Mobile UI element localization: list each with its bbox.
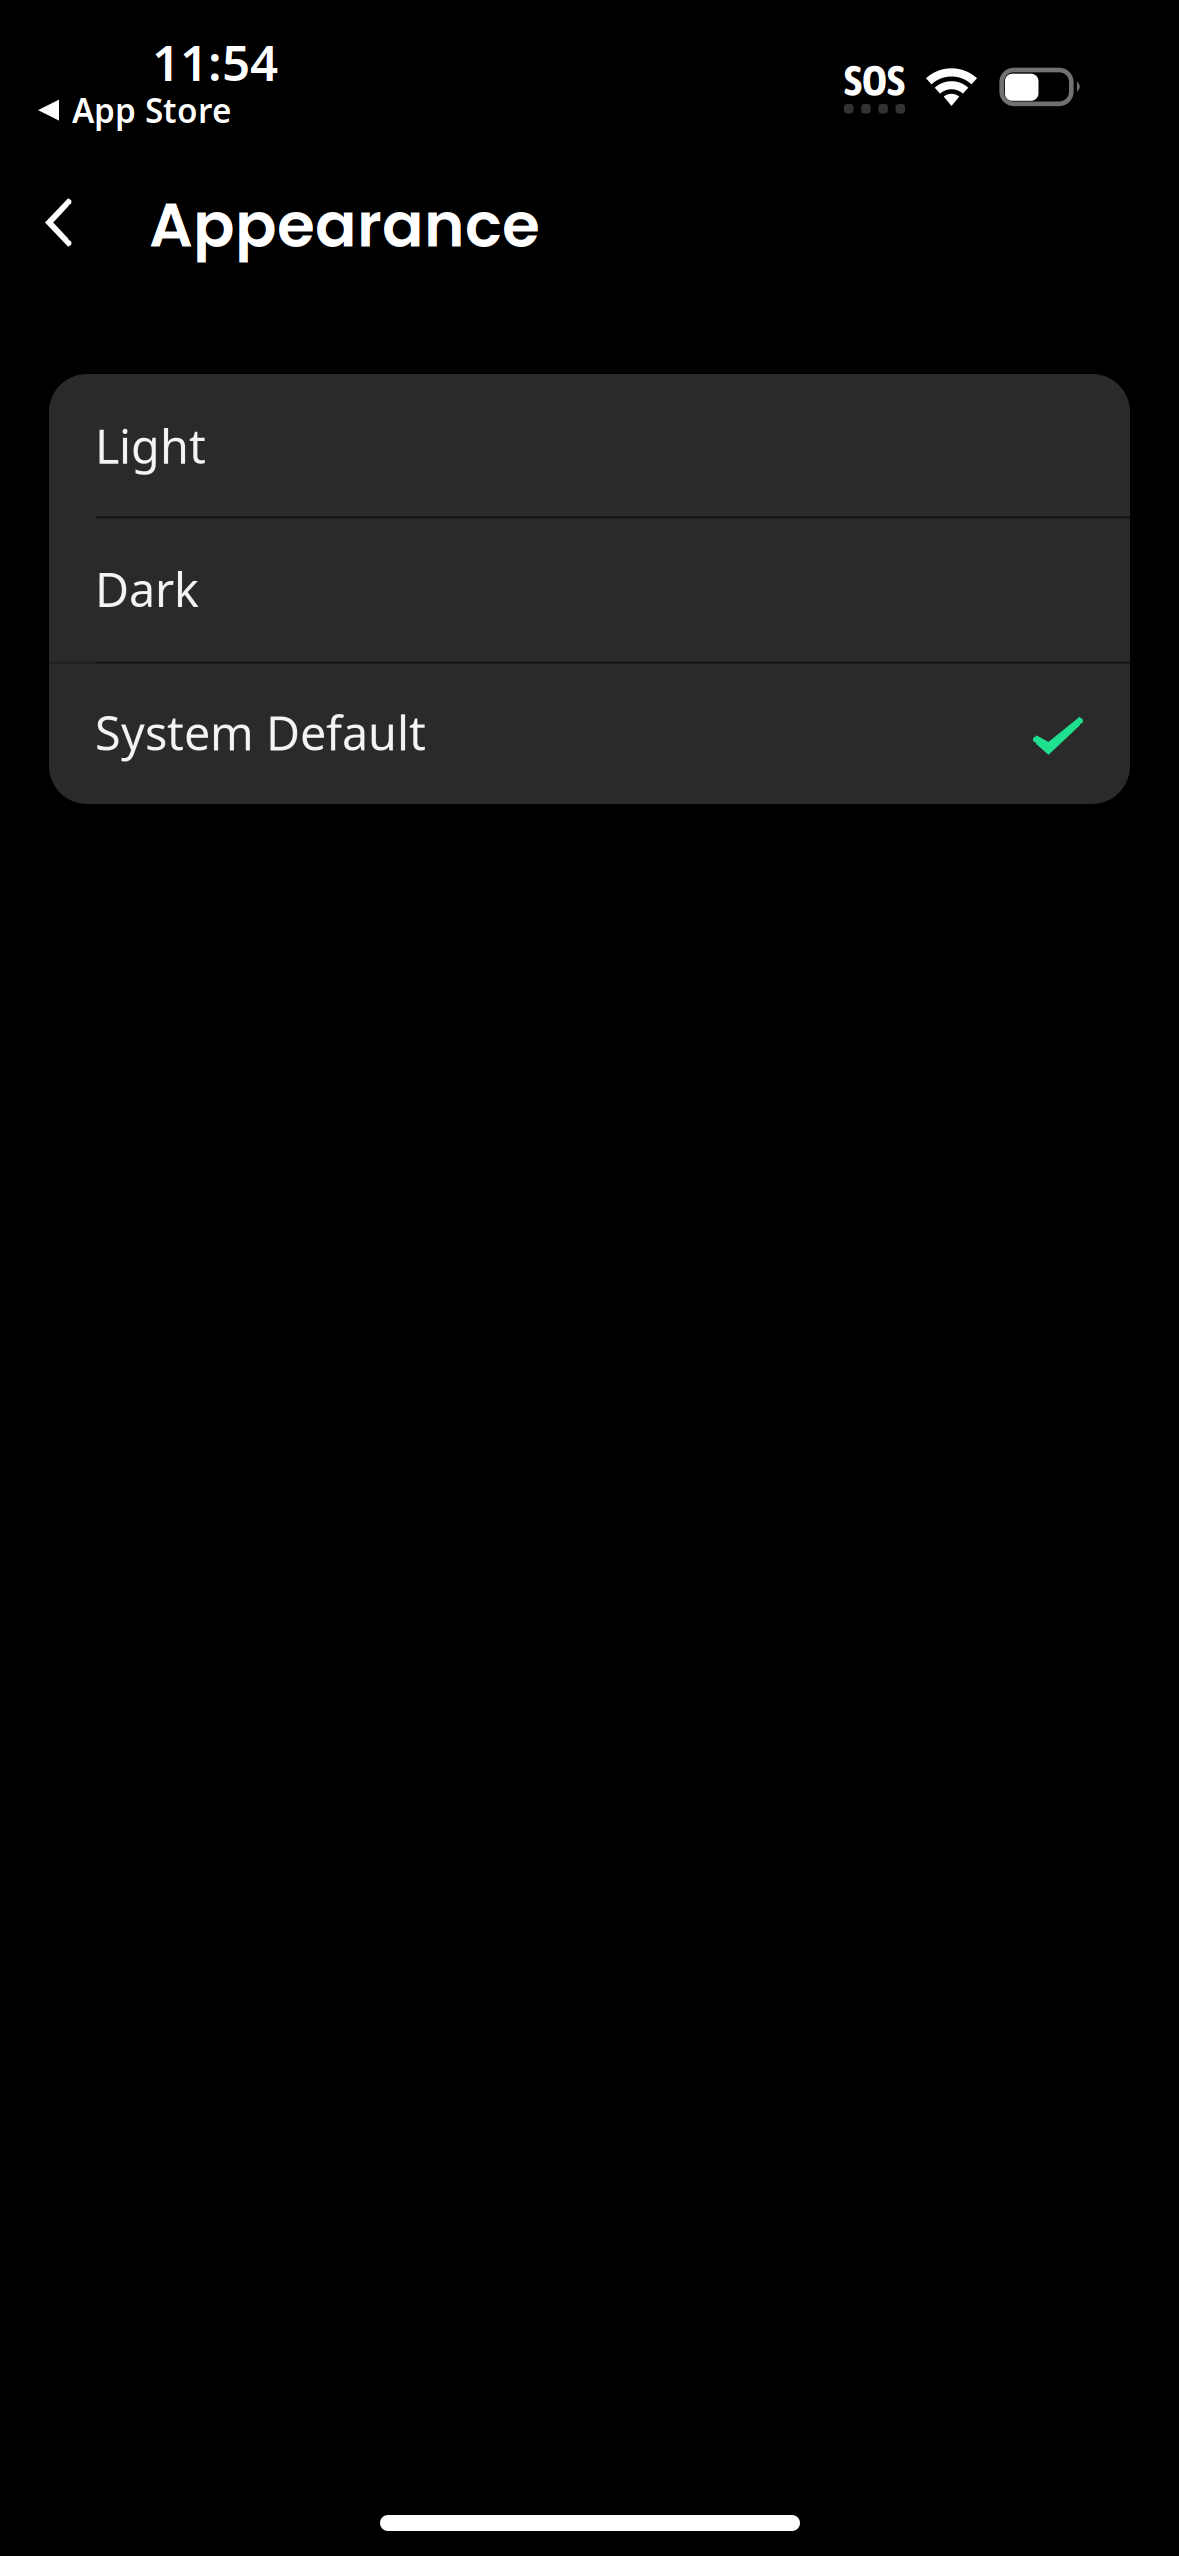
staticText: 11:54 — [152, 29, 278, 94]
staticText: Light — [95, 415, 206, 477]
staticText: SOS — [844, 56, 905, 105]
button[interactable]: Dark — [49, 517, 1130, 661]
button[interactable]: Light — [49, 374, 1130, 517]
button[interactable]: App Store — [0, 78, 248, 142]
staticText: App Store — [72, 88, 232, 132]
staticText: Dark — [95, 558, 199, 620]
button[interactable]: Back — [18, 175, 107, 270]
staticText: Appearance — [149, 182, 540, 268]
staticText: System Default — [95, 701, 426, 763]
button[interactable]: System Default — [49, 661, 1130, 804]
